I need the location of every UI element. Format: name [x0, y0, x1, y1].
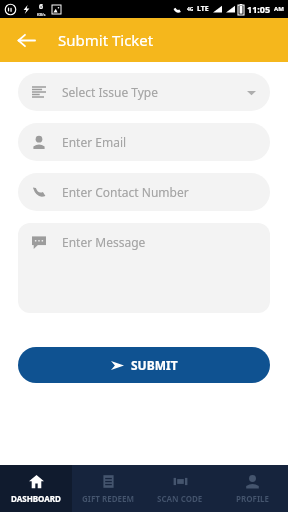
staticText: SCAN CODE — [157, 493, 203, 504]
staticText: LTE — [197, 4, 209, 14]
staticText: Enter Message — [62, 234, 146, 250]
staticText: 4G — [187, 6, 194, 13]
staticText: 6 — [39, 2, 44, 12]
button[interactable]: DASHBOARD — [0, 465, 72, 512]
button[interactable]: Enter Contact Number — [18, 173, 270, 211]
staticText: Select Issue Type — [62, 84, 159, 100]
staticText: DASHBOARD — [11, 493, 61, 504]
button[interactable]: Select Issue Type — [18, 73, 270, 111]
staticText: Enter Email — [62, 134, 127, 150]
staticText: KB/s — [37, 12, 46, 17]
button[interactable]: SUBMIT — [18, 347, 270, 383]
staticText: GIFT REDEEM — [82, 493, 135, 504]
button[interactable]: GIFT REDEEM — [72, 465, 144, 512]
button[interactable]: Enter Message — [18, 223, 270, 313]
button[interactable]: SCAN CODE — [144, 465, 216, 512]
staticText: Enter Contact Number — [62, 184, 189, 200]
staticText: AM — [274, 5, 284, 13]
button[interactable]: Back — [12, 26, 40, 54]
button[interactable]: Enter Email — [18, 123, 270, 161]
button[interactable]: PROFILE — [216, 465, 288, 512]
staticText: PROFILE — [236, 493, 269, 504]
staticText: 11:05 — [247, 3, 271, 15]
staticText: Submit Ticket — [58, 30, 154, 50]
staticText: SUBMIT — [131, 357, 178, 373]
